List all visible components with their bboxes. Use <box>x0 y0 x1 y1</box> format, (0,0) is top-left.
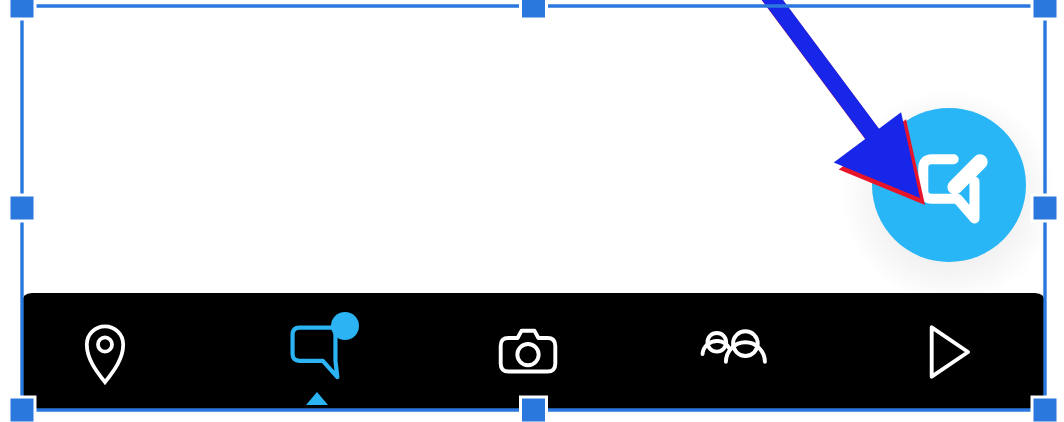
button[interactable]: Map <box>45 293 165 409</box>
button[interactable]: Chat <box>258 293 378 409</box>
button[interactable]: Stories <box>883 293 1003 409</box>
button[interactable]: Camera <box>468 293 588 409</box>
button[interactable]: Friends <box>675 293 795 409</box>
button[interactable]: Compose new chat <box>872 108 1026 262</box>
